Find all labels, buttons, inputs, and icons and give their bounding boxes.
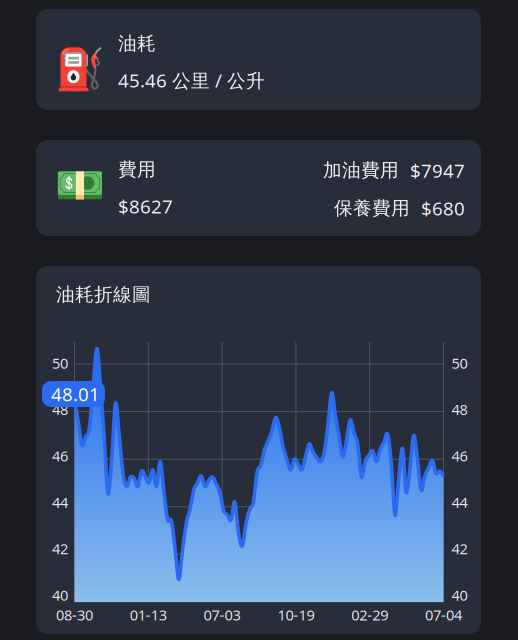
staticText: 50 [52,353,68,373]
staticText: 50 [451,353,467,373]
staticText: 48 [52,400,68,419]
staticText: $7947 [410,158,465,183]
staticText: 07-03 [204,605,241,624]
staticText: 油耗 [118,32,156,55]
staticText: ⛽ [55,46,105,92]
button[interactable]: 💵 [36,140,481,236]
staticText: 08-30 [56,605,93,624]
staticText: 費用 [118,158,156,181]
staticText: 💵 [55,162,105,208]
staticText: 44 [52,492,68,512]
staticText: 40 [52,585,68,605]
staticText: 加油費用 [323,159,399,182]
staticText: $8627 [118,194,173,219]
staticText: 45.46 公里 / 公升 [118,68,265,93]
staticText: 46 [52,446,68,466]
staticText: 48 [451,400,467,419]
staticText: 10-19 [277,605,314,624]
staticText: 42 [52,539,68,558]
staticText: 油耗折線圖 [56,283,151,306]
button[interactable]: ⛽ [36,9,481,110]
staticText: 01-13 [130,605,167,624]
staticText: 02-29 [351,605,388,624]
staticText: 07-04 [425,605,462,624]
staticText: 保養費用 [334,197,410,220]
staticText: 40 [451,585,467,605]
staticText: $680 [421,196,465,221]
staticText: 48.01 [51,382,100,406]
staticText: 42 [451,539,467,558]
staticText: 44 [451,492,467,512]
staticText: 46 [451,446,467,466]
